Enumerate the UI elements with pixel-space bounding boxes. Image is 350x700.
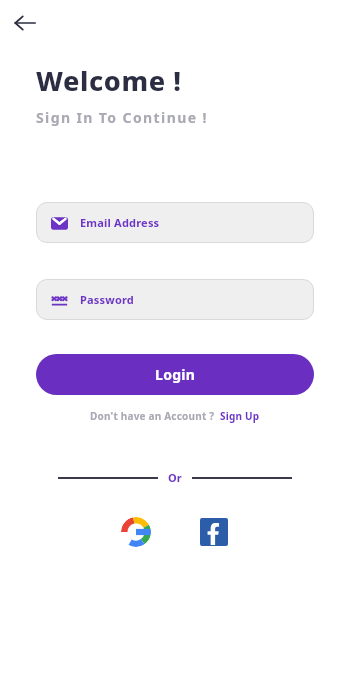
button[interactable]: Sign Up — [220, 409, 260, 423]
staticText: Or — [168, 470, 182, 485]
staticText: Email Address — [80, 215, 160, 230]
button[interactable]: Sign in with Facebook — [194, 512, 234, 552]
button[interactable]: Password — [36, 279, 314, 320]
button[interactable]: Login — [36, 354, 314, 395]
button[interactable]: Sign in with Google — [116, 512, 156, 552]
staticText: Welcome ! — [36, 62, 182, 99]
staticText: Sign In To Continue ! — [36, 108, 208, 127]
button[interactable]: Email Address — [36, 202, 314, 243]
button[interactable]: Back — [8, 6, 42, 40]
staticText: Password — [80, 292, 135, 307]
staticText: Login — [155, 365, 196, 384]
staticText: Don't have an Account ? — [90, 409, 215, 423]
staticText: Sign Up — [220, 409, 260, 423]
